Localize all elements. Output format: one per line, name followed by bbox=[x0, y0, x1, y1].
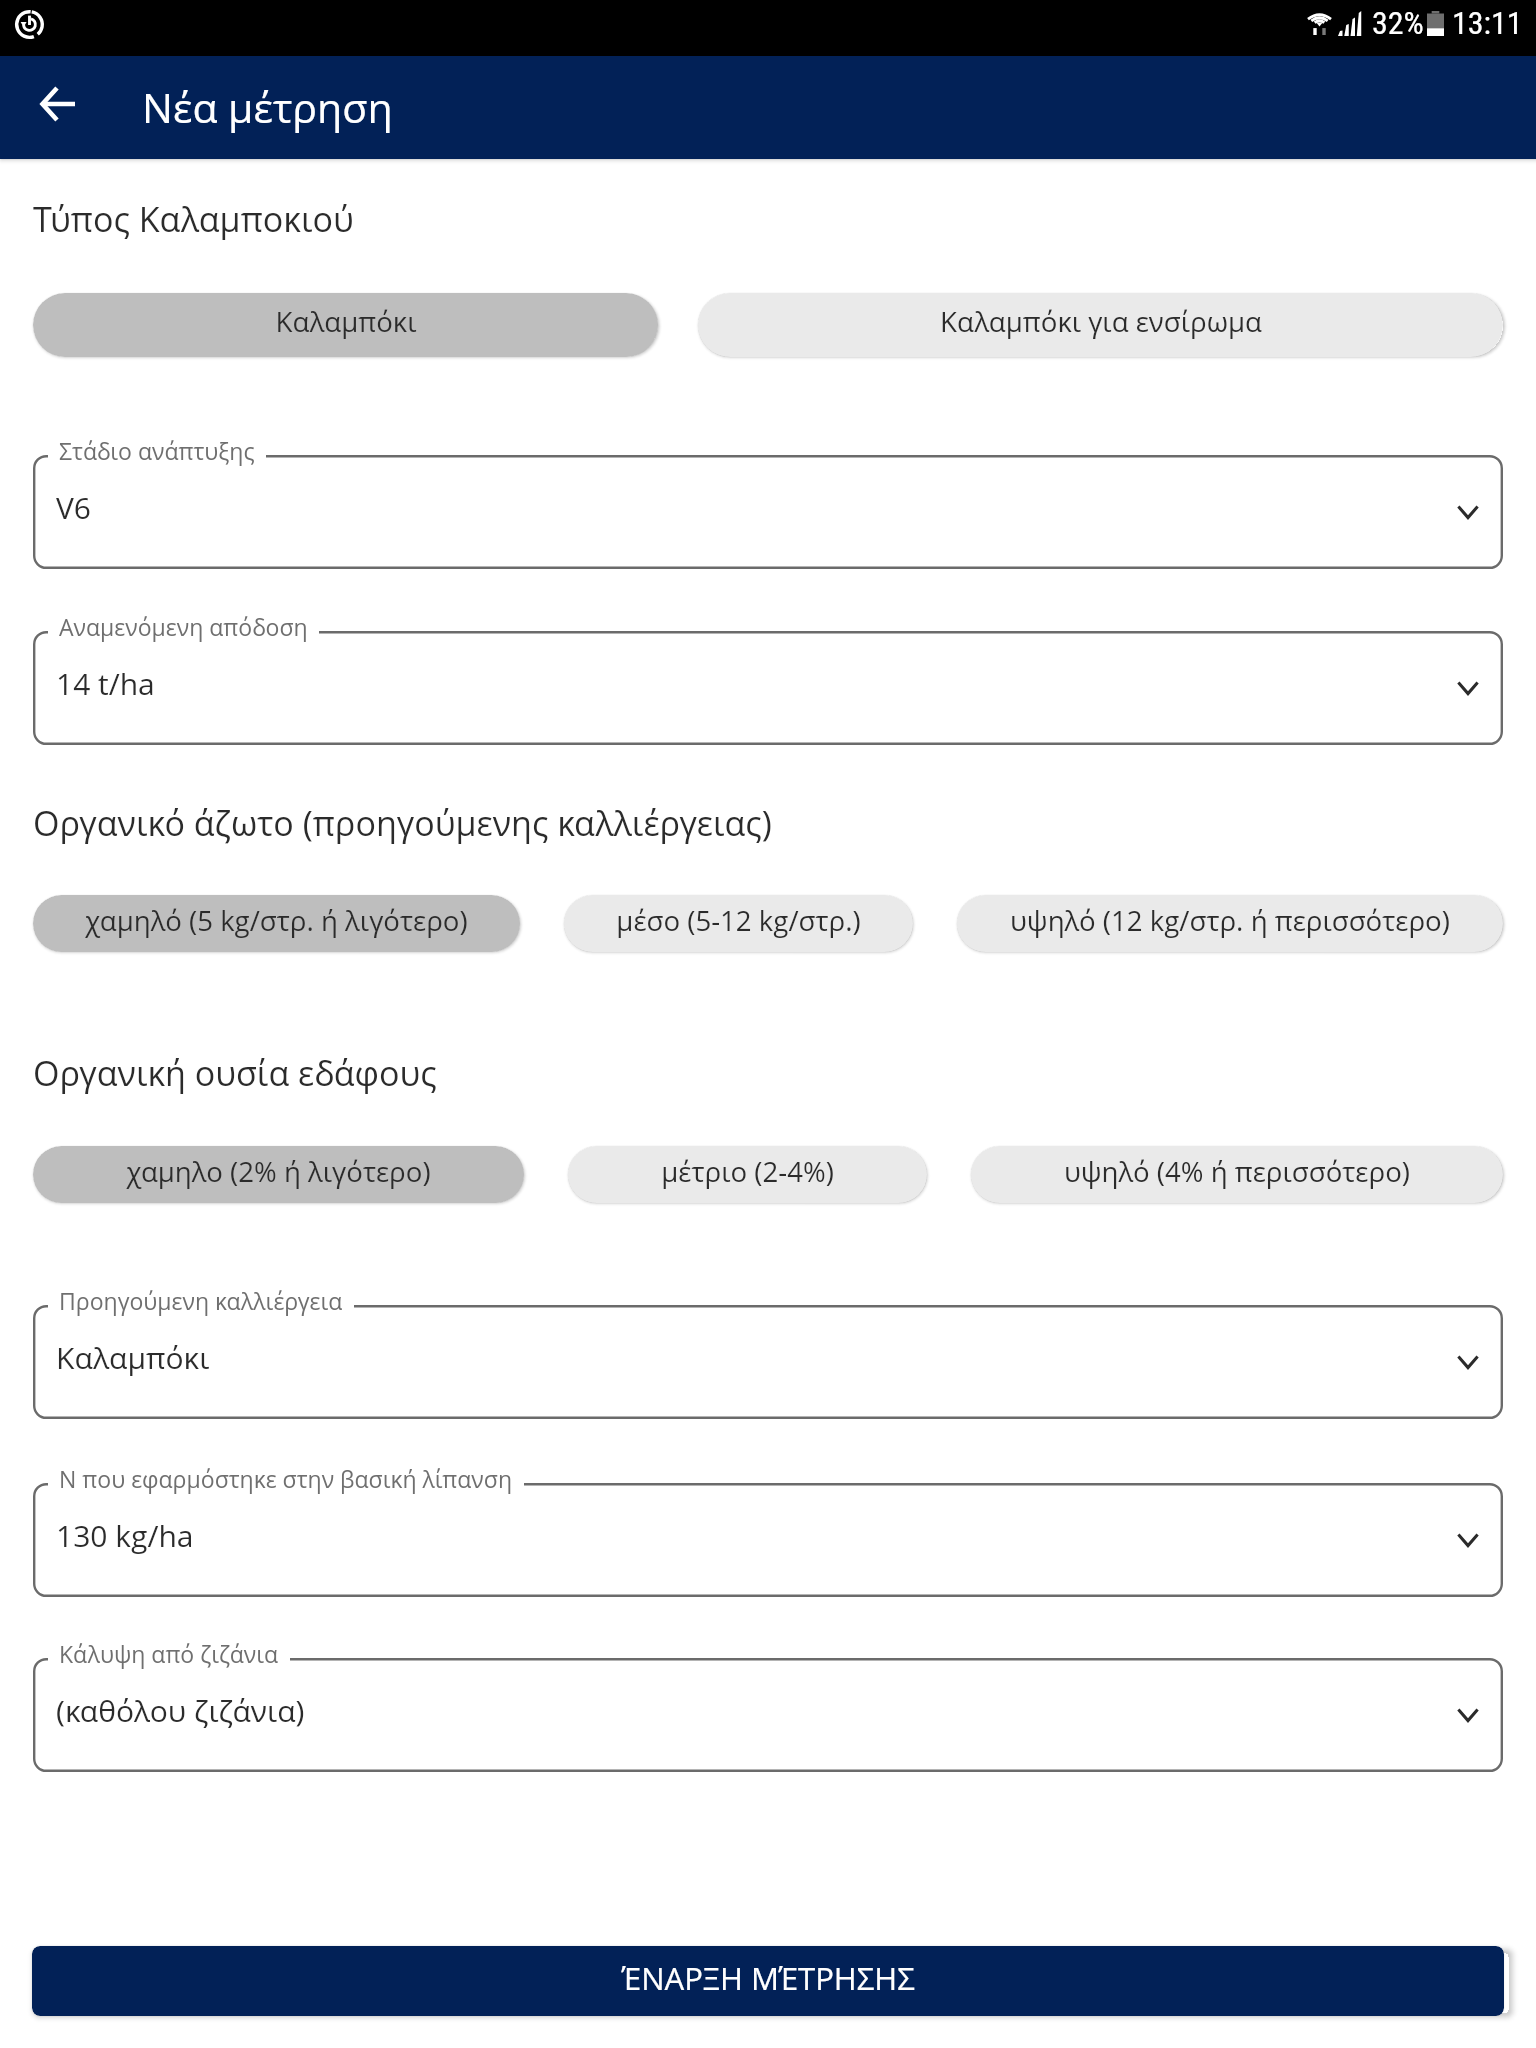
button[interactable]: Back bbox=[16, 62, 100, 146]
staticText: Ν που εφαρμόστηκε στην βασική λίπανση bbox=[59, 1463, 513, 1494]
staticText: μέσο (5-12 kg/στρ.) bbox=[616, 901, 861, 939]
staticText: Καλαμπόκι για ενσίρωμα bbox=[940, 302, 1262, 340]
button[interactable]: 14 t/ha bbox=[33, 631, 1503, 745]
staticText: μέτριο (2-4%) bbox=[661, 1152, 834, 1190]
staticText: χαμηλο (2% ή λιγότερο) bbox=[126, 1152, 431, 1190]
staticText: χαμηλό (5 kg/στρ. ή λιγότερο) bbox=[85, 901, 468, 939]
button[interactable]: μέσο (5-12 kg/στρ.) bbox=[564, 895, 913, 952]
staticText: V6 bbox=[56, 487, 92, 528]
staticText: Τύπος Καλαμποκιού bbox=[33, 196, 354, 242]
button[interactable]: 130 kg/ha bbox=[33, 1483, 1503, 1597]
button[interactable]: χαμηλό (5 kg/στρ. ή λιγότερο) bbox=[33, 895, 520, 952]
staticText: Αναμενόμενη απόδοση bbox=[59, 611, 308, 642]
button[interactable]: Καλαμπόκι bbox=[33, 293, 658, 357]
staticText: 32% bbox=[1372, 4, 1424, 42]
button[interactable]: Καλαμπόκι bbox=[33, 1305, 1503, 1419]
staticText: υψηλό (4% ή περισσότερο) bbox=[1064, 1152, 1410, 1190]
staticText: Προηγούμενη καλλιέργεια bbox=[59, 1285, 343, 1316]
other: App status bbox=[15, 10, 44, 39]
button[interactable]: ΈΝΑΡΞΗ ΜΈΤΡΗΣΗΣ bbox=[32, 1946, 1504, 2016]
staticText: (καθόλου ζιζάνια) bbox=[56, 1690, 305, 1731]
staticText: Στάδιο ανάπτυξης bbox=[59, 435, 255, 466]
staticText: Καλαμπόκι bbox=[275, 302, 417, 340]
button[interactable]: V6 bbox=[33, 455, 1503, 569]
staticText: Κάλυψη από ζιζάνια bbox=[59, 1638, 279, 1669]
button[interactable]: Καλαμπόκι για ενσίρωμα bbox=[698, 293, 1503, 357]
button[interactable]: χαμηλο (2% ή λιγότερο) bbox=[33, 1146, 524, 1203]
button[interactable]: (καθόλου ζιζάνια) bbox=[33, 1658, 1503, 1772]
staticText: ΈΝΑΡΞΗ ΜΈΤΡΗΣΗΣ bbox=[622, 1957, 915, 1999]
staticText: Καλαμπόκι bbox=[56, 1337, 210, 1378]
staticText: υψηλό (12 kg/στρ. ή περισσότερο) bbox=[1010, 901, 1450, 939]
button[interactable]: υψηλό (4% ή περισσότερο) bbox=[971, 1146, 1503, 1203]
staticText: 13:11 bbox=[1452, 4, 1523, 42]
button[interactable]: υψηλό (12 kg/στρ. ή περισσότερο) bbox=[957, 895, 1503, 952]
staticText: 130 kg/ha bbox=[56, 1515, 194, 1556]
button[interactable]: μέτριο (2-4%) bbox=[568, 1146, 927, 1203]
staticText: Νέα μέτρηση bbox=[142, 79, 393, 135]
staticText: 14 t/ha bbox=[56, 663, 155, 704]
staticText: Οργανική ουσία εδάφους bbox=[33, 1050, 437, 1096]
staticText: Οργανικό άζωτο (προηγούμενης καλλιέργεια… bbox=[33, 800, 772, 846]
